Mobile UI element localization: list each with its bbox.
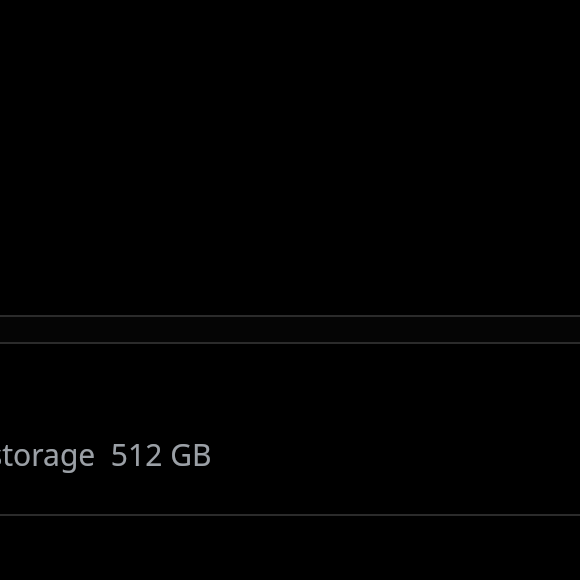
staticText: Available storage 300.7 GB / Total stora…	[0, 434, 580, 475]
button[interactable]	[0, 360, 580, 514]
